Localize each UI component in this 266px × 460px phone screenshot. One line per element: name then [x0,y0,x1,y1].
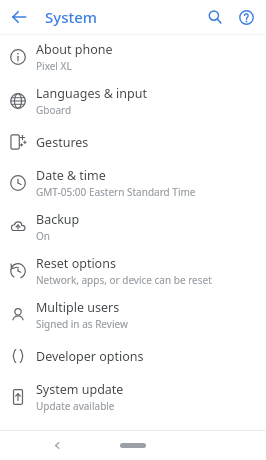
button[interactable]: Back [4,2,34,32]
staticText: System update [36,381,124,398]
button[interactable]: System update [0,375,266,419]
staticText: System [45,7,98,27]
staticText: Reset options [36,255,116,272]
staticText: Network, apps, or device can be reset [36,273,212,287]
staticText: Backup [36,211,80,228]
button[interactable]: Developer options [0,337,266,375]
staticText: About phone [36,41,113,58]
staticText: Multiple users [36,299,120,316]
button[interactable]: Reset options [0,249,266,293]
button[interactable]: Home [118,437,148,453]
button[interactable]: Date & time [0,161,266,205]
button[interactable]: Languages & input [0,79,266,123]
staticText: Gboard [36,103,72,117]
staticText: Developer options [36,348,144,365]
staticText: GMT-05:00 Eastern Standard Time [36,185,196,199]
staticText: Gestures [36,134,89,151]
staticText: Pixel XL [36,59,72,73]
button[interactable]: Gestures [0,123,266,161]
staticText: Update available [36,399,115,413]
button[interactable]: Search [201,3,229,31]
staticText: On [36,229,50,243]
staticText: Languages & input [36,85,147,102]
button[interactable]: Backup [0,205,266,249]
button[interactable]: About phone [0,35,266,79]
staticText: Date & time [36,167,106,184]
button[interactable]: Back [44,432,70,458]
button[interactable]: Help [232,3,260,31]
staticText: Signed in as Review [36,317,128,331]
button[interactable]: Multiple users [0,293,266,337]
